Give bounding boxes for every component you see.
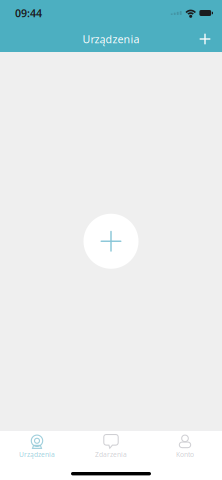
button[interactable]: Add device: [83, 214, 138, 269]
button[interactable]: Add device: [192, 26, 218, 52]
button[interactable]: Konto: [148, 431, 222, 460]
staticText: Konto: [176, 450, 194, 459]
staticText: Urządzenia: [82, 32, 139, 46]
staticText: 09:44: [15, 6, 42, 20]
staticText: Urządzenia: [19, 450, 55, 459]
staticText: Zdarzenia: [95, 450, 127, 459]
button[interactable]: Zdarzenia: [74, 431, 148, 460]
button[interactable]: Urządzenia: [0, 431, 74, 460]
